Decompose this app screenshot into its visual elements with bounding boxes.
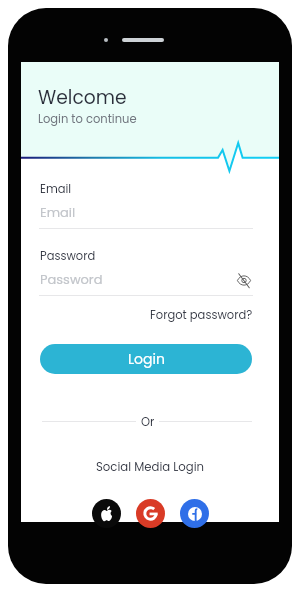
staticText: Login bbox=[128, 349, 165, 369]
button[interactable]: Sign in with Google bbox=[136, 499, 165, 528]
staticText: Email bbox=[40, 203, 76, 221]
button[interactable]: Sign in with Facebook bbox=[180, 499, 209, 528]
staticText: Email bbox=[40, 181, 72, 197]
staticText: Password bbox=[40, 270, 103, 288]
staticText: Or bbox=[141, 414, 155, 430]
staticText: Forgot password? bbox=[150, 307, 253, 323]
staticText: Social Media Login bbox=[96, 459, 205, 475]
button[interactable]: Sign in with Apple bbox=[92, 499, 121, 528]
staticText: Password bbox=[40, 248, 96, 264]
button[interactable]: Forgot password? bbox=[148, 307, 253, 323]
button[interactable]: Login bbox=[40, 344, 252, 374]
staticText: Welcome bbox=[38, 84, 127, 110]
staticText: Login to continue bbox=[38, 111, 137, 127]
button[interactable]: Show password bbox=[235, 271, 253, 289]
